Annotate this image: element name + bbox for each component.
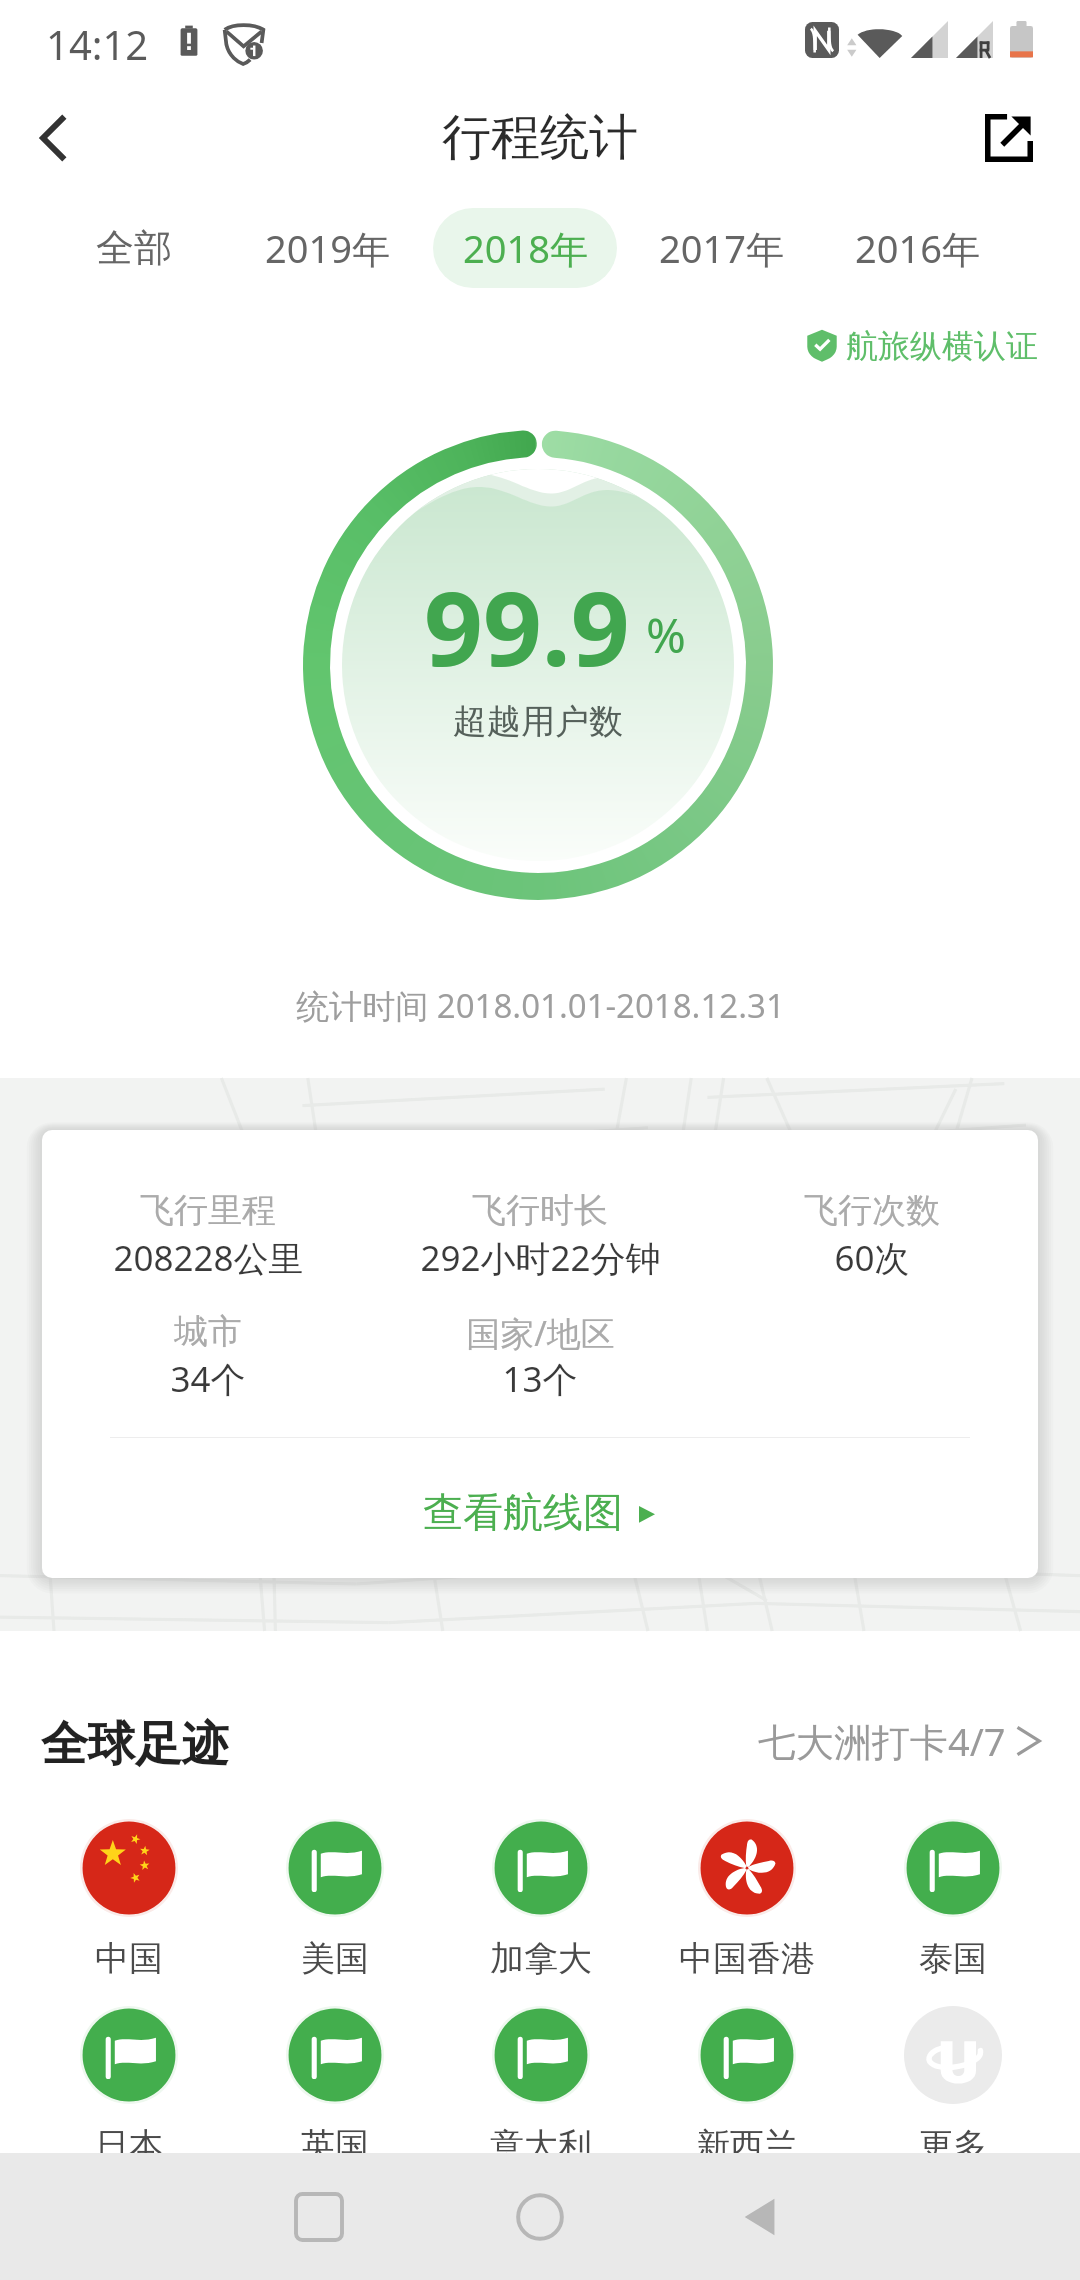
staticText: 飞行次数 xyxy=(804,1189,940,1232)
staticText: 行程统计 xyxy=(442,107,638,169)
staticText: 更多 xyxy=(919,2124,987,2167)
button[interactable]: 2017年 xyxy=(629,208,813,288)
staticText: 加拿大 xyxy=(490,1937,592,1980)
staticText: 14:12 xyxy=(46,17,149,71)
staticText: 99.9 xyxy=(424,556,630,676)
staticText: 34个 xyxy=(170,1355,246,1403)
staticText: 292小时22分钟 xyxy=(420,1234,661,1282)
staticText: 中国 xyxy=(95,1937,163,1980)
staticText: 208228公里 xyxy=(113,1234,304,1282)
staticText: 超越用户数 xyxy=(453,700,623,743)
button[interactable]: 航旅纵横认证 xyxy=(846,326,1040,370)
staticText: % xyxy=(646,602,686,667)
button[interactable]: 中国 xyxy=(26,1813,232,1963)
staticText: 英国 xyxy=(301,2124,369,2167)
button[interactable]: 2019年 xyxy=(235,208,419,288)
staticText: 2017年 xyxy=(659,222,784,274)
staticText: 全球足迹 xyxy=(41,1715,229,1774)
staticText: 60次 xyxy=(834,1234,910,1282)
staticText: 2019年 xyxy=(265,222,390,274)
button[interactable]: 美国 xyxy=(232,1813,438,1963)
staticText: 新西兰 xyxy=(696,2124,798,2167)
staticText: 日本 xyxy=(95,2124,163,2167)
staticText: 全部 xyxy=(96,224,172,272)
button[interactable]: 查看航线图 xyxy=(330,1462,750,1562)
button[interactable]: 泰国 xyxy=(850,1813,1056,1963)
button[interactable]: 加拿大 xyxy=(438,1813,644,1963)
staticText: 意大利 xyxy=(490,2124,592,2167)
staticText: 航旅纵横认证 xyxy=(846,326,1038,366)
button[interactable]: 2018年 xyxy=(433,208,617,288)
staticText: 七大洲打卡4/7 xyxy=(758,1715,1006,1767)
button[interactable]: 全部 xyxy=(42,208,226,288)
button[interactable]: 中国香港 xyxy=(644,1813,850,1963)
button[interactable]: 全球足迹 xyxy=(41,1706,341,1782)
staticText: 中国香港 xyxy=(679,1937,815,1980)
button[interactable]: Back xyxy=(706,2153,816,2280)
staticText: 13个 xyxy=(502,1355,578,1403)
button[interactable]: 新西兰 xyxy=(644,2000,850,2150)
button[interactable]: Share xyxy=(969,98,1049,178)
staticText: 飞行时长 xyxy=(472,1189,608,1232)
staticText: 2016年 xyxy=(855,222,980,274)
staticText: 城市 xyxy=(174,1310,242,1353)
staticText: 国家/地区 xyxy=(466,1310,615,1356)
staticText: 2018年 xyxy=(463,222,588,274)
button[interactable]: 2016年 xyxy=(825,208,1009,288)
button[interactable]: Home xyxy=(485,2153,595,2280)
button[interactable]: 更多 xyxy=(850,2000,1056,2150)
staticText: 泰国 xyxy=(919,1937,987,1980)
staticText: 美国 xyxy=(301,1937,369,1980)
staticText: 飞行里程 xyxy=(140,1189,276,1232)
button[interactable]: 日本 xyxy=(26,2000,232,2150)
button[interactable]: 七大洲打卡4/7 xyxy=(758,1703,1058,1779)
button[interactable]: Recents xyxy=(264,2153,374,2280)
button[interactable]: 英国 xyxy=(232,2000,438,2150)
button[interactable]: Back xyxy=(15,98,95,178)
staticText: 查看航线图 xyxy=(423,1487,623,1537)
staticText: 统计时间 2018.01.01-2018.12.31 xyxy=(296,983,785,1028)
button[interactable]: 意大利 xyxy=(438,2000,644,2150)
